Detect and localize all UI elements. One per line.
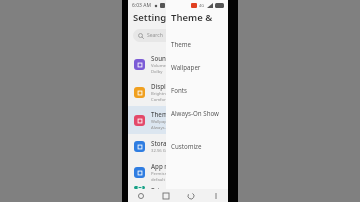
button[interactable]: Privacy bbox=[128, 186, 184, 189]
staticText: Search settings bbox=[147, 32, 174, 39]
staticText: Theme & lockscreen bbox=[151, 110, 180, 118]
staticText: Fonts bbox=[171, 86, 187, 94]
staticText: Display & brightness bbox=[151, 82, 180, 90]
staticText: Wallpaper, theme, bbox=[151, 119, 180, 125]
button[interactable]: Theme bbox=[166, 32, 228, 55]
staticText: Theme & lockscreen bbox=[171, 11, 228, 24]
staticText: Theme bbox=[171, 40, 192, 48]
button[interactable]: Wallpaper bbox=[166, 55, 228, 78]
staticText: Brightness, Eye bbox=[151, 91, 180, 97]
staticText: Customize lockscreen bbox=[171, 142, 228, 150]
button[interactable]: Theme & lockscreen bbox=[128, 106, 184, 134]
button[interactable]: Search settings bbox=[133, 29, 179, 42]
staticText: 4G bbox=[199, 3, 205, 8]
staticText: Settings bbox=[133, 11, 171, 24]
staticText: 32.56 GB used bbox=[151, 148, 180, 154]
staticText: Privacy bbox=[151, 186, 173, 189]
staticText: Volume adjusting, bbox=[151, 63, 180, 69]
staticText: default apps bbox=[151, 177, 176, 183]
staticText: Always-On Display bbox=[151, 125, 180, 131]
staticText: Permissions, bbox=[151, 171, 176, 177]
button[interactable]: Back bbox=[178, 189, 203, 202]
button[interactable]: Customize lockscreen bbox=[166, 134, 228, 157]
staticText: Always-On Show bbox=[171, 109, 219, 117]
button[interactable]: Storage bbox=[128, 134, 184, 158]
staticText: Storage bbox=[151, 139, 174, 147]
button[interactable]: Display & brightness bbox=[128, 78, 184, 106]
staticText: 6:03 AM bbox=[132, 2, 151, 9]
staticText: Wallpaper bbox=[171, 63, 201, 71]
button[interactable]: More bbox=[203, 189, 228, 202]
button[interactable]: Home bbox=[153, 189, 178, 202]
staticText: Sound & vibration bbox=[151, 54, 180, 62]
button[interactable]: Sound & vibration bbox=[128, 50, 184, 78]
staticText: Comfort, Font size bbox=[151, 97, 180, 103]
button[interactable]: App management bbox=[128, 158, 184, 186]
button[interactable]: Recents bbox=[128, 189, 153, 202]
staticText: App management bbox=[151, 162, 180, 170]
button[interactable]: Fonts bbox=[166, 78, 228, 101]
staticText: Dolby bbox=[151, 69, 163, 75]
button[interactable]: Always-On Show bbox=[166, 101, 228, 124]
